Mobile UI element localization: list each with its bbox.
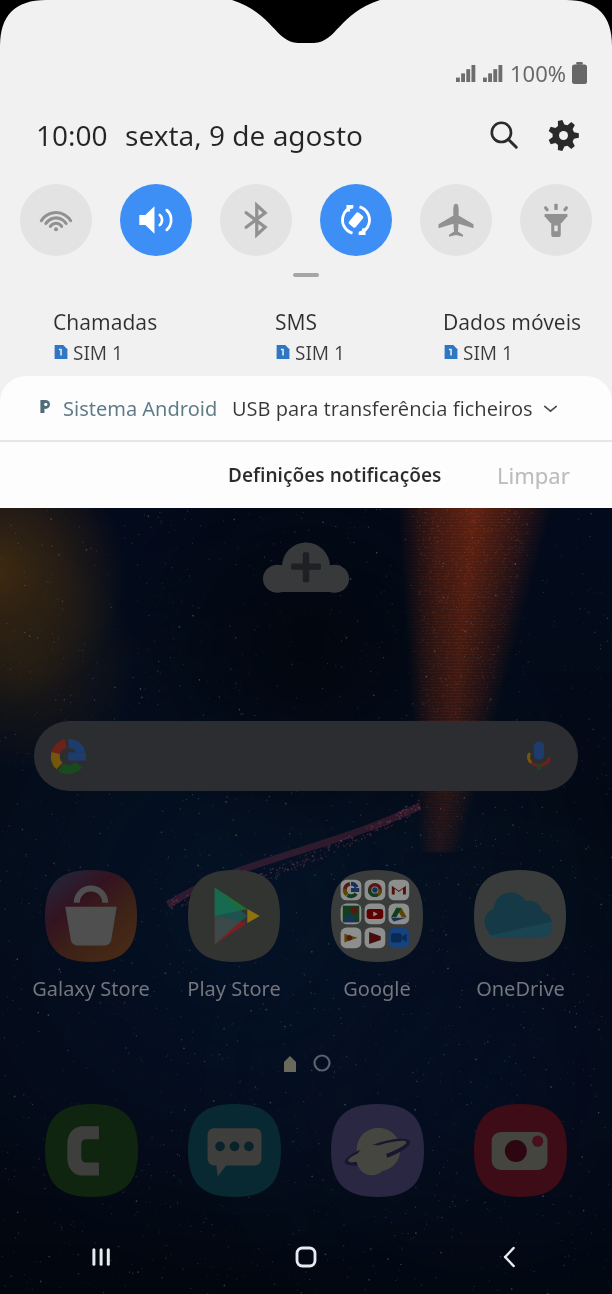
- staticText: SIM 1: [295, 340, 345, 366]
- button[interactable]: Limpar: [488, 451, 579, 499]
- button[interactable]: Internet: [331, 1104, 424, 1197]
- button[interactable]: Back: [408, 1220, 612, 1294]
- button[interactable]: Sistema Android: [38, 376, 559, 440]
- staticText: sexta, 9 de agosto: [125, 116, 363, 154]
- button[interactable]: SMS: [275, 308, 345, 366]
- staticText: Limpar: [497, 460, 570, 490]
- staticText: Chamadas: [53, 308, 158, 337]
- staticText: Google: [343, 975, 411, 1002]
- staticText: 10:00: [36, 116, 108, 154]
- staticText: SIM 1: [73, 340, 123, 366]
- button[interactable]: OneDrive: [457, 870, 583, 1002]
- button[interactable]: Galaxy Store: [28, 870, 154, 1002]
- button[interactable]: Auto rotate: [320, 184, 392, 256]
- button[interactable]: Bluetooth: [220, 184, 292, 256]
- button[interactable]: Google: [314, 870, 440, 1002]
- button[interactable]: Sound: [120, 184, 192, 256]
- button[interactable]: Chamadas: [53, 308, 158, 366]
- staticText: Definições notificações: [228, 462, 442, 488]
- button[interactable]: Wi-Fi: [20, 184, 92, 256]
- button[interactable]: Recents: [0, 1220, 204, 1294]
- staticText: USB para transferência ficheiros: [232, 395, 533, 422]
- button[interactable]: Settings: [540, 112, 586, 158]
- button[interactable]: Play Store: [171, 870, 297, 1002]
- button[interactable]: Camera: [474, 1104, 567, 1197]
- staticText: Sistema Android: [63, 395, 218, 422]
- staticText: 100%: [510, 58, 567, 88]
- staticText: Dados móveis: [443, 308, 582, 337]
- button[interactable]: Phone: [45, 1104, 138, 1197]
- staticText: OneDrive: [476, 975, 565, 1002]
- button[interactable]: Definições notificações: [219, 453, 451, 497]
- button[interactable]: Home: [204, 1220, 408, 1294]
- button[interactable]: Airplane mode: [420, 184, 492, 256]
- staticText: SIM 1: [463, 340, 513, 366]
- button[interactable]: Search: [481, 112, 527, 158]
- staticText: Galaxy Store: [32, 975, 150, 1002]
- button[interactable]: Dados móveis: [443, 308, 582, 366]
- staticText: SMS: [275, 308, 318, 337]
- staticText: Play Store: [187, 975, 281, 1002]
- button[interactable]: Messages: [188, 1104, 281, 1197]
- button[interactable]: Flashlight: [520, 184, 592, 256]
- button[interactable]: Google search: [34, 721, 578, 791]
